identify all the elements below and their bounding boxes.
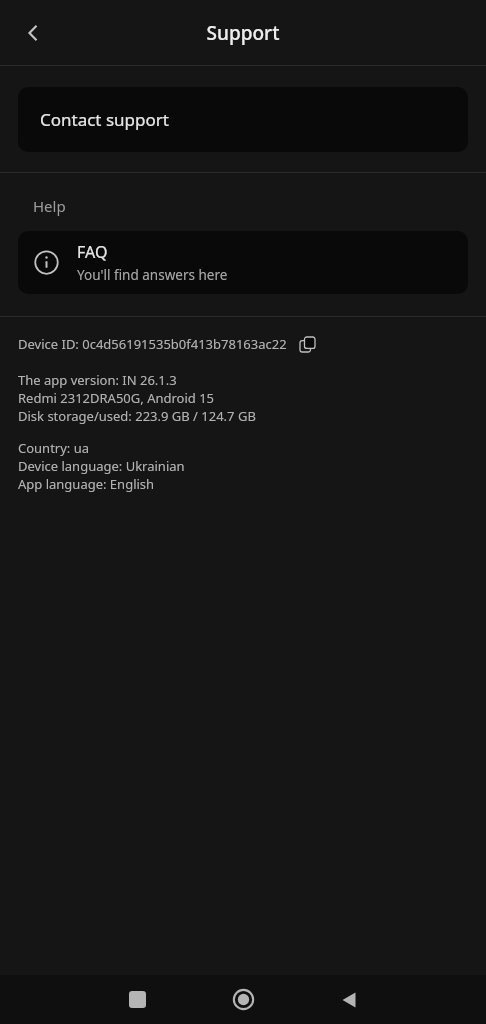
button[interactable]: Copy device ID <box>296 333 318 355</box>
staticText: Redmi 2312DRA50G, Android 15 <box>18 389 215 407</box>
staticText: FAQ <box>77 241 108 263</box>
button[interactable]: Recent apps <box>106 975 168 1024</box>
staticText: Support <box>0 20 486 46</box>
button[interactable]: Contact support <box>18 87 468 152</box>
staticText: Disk storage/used: 223.9 GB / 124.7 GB <box>18 407 256 425</box>
button[interactable]: Back <box>10 10 56 56</box>
button[interactable]: FAQ <box>18 231 468 294</box>
staticText: The app version: IN 26.1.3 <box>18 371 177 389</box>
staticText: Contact support <box>40 108 169 131</box>
button[interactable]: Back <box>318 975 380 1024</box>
button[interactable]: Home <box>212 975 274 1024</box>
staticText: You'll find answers here <box>77 266 228 284</box>
staticText: Device ID: 0c4d56191535b0f413b78163ac22 <box>18 335 287 353</box>
staticText: App language: English <box>18 475 155 493</box>
staticText: Help <box>33 196 66 216</box>
staticText: Country: ua <box>18 439 90 457</box>
staticText: Device language: Ukrainian <box>18 457 185 475</box>
